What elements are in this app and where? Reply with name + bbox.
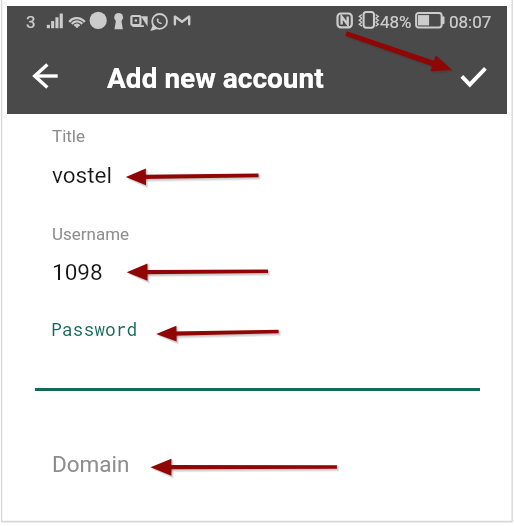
button[interactable]: Save account xyxy=(450,52,498,100)
staticText: 48% xyxy=(380,12,412,32)
staticText: Title xyxy=(52,126,85,146)
staticText: Username xyxy=(52,224,130,244)
staticText: Add new account xyxy=(107,62,324,95)
staticText: 3 xyxy=(26,12,36,32)
button[interactable]: vostel xyxy=(52,162,112,188)
staticText: 08:07 xyxy=(449,12,492,32)
button[interactable]: Navigate up xyxy=(22,52,70,100)
button[interactable]: 1098 xyxy=(52,259,103,285)
button[interactable]: Password xyxy=(51,317,138,341)
button[interactable]: Domain xyxy=(52,451,130,477)
